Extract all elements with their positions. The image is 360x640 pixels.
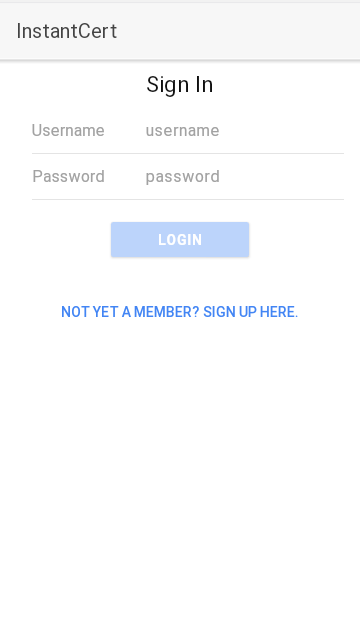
staticText: Password <box>32 167 146 186</box>
staticText: InstantCert <box>16 19 118 42</box>
staticText: Username <box>32 121 146 140</box>
staticText: Sign In <box>0 72 360 98</box>
staticText: LOGIN <box>158 232 203 248</box>
staticText: NOT YET A MEMBER? SIGN UP HERE. <box>61 304 299 320</box>
staticText: username <box>146 121 221 140</box>
button[interactable]: LOGIN <box>111 222 249 257</box>
staticText: password <box>146 167 221 186</box>
button[interactable]: NOT YET A MEMBER? SIGN UP HERE. <box>51 298 309 326</box>
button[interactable]: Username <box>32 121 344 140</box>
button[interactable]: Password <box>32 167 344 186</box>
